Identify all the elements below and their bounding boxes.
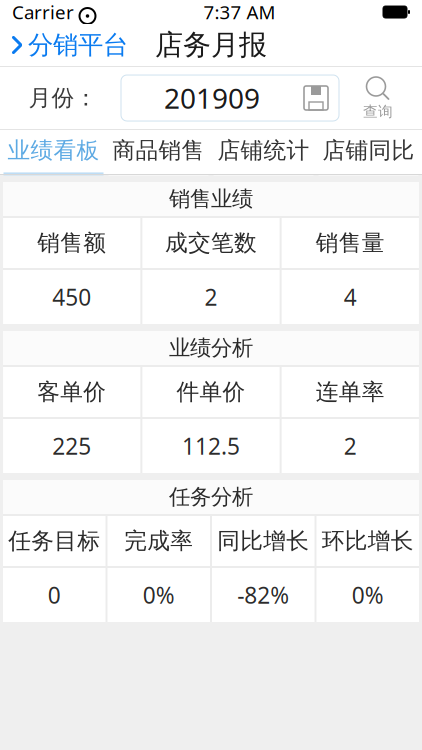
staticText: 任务分析 <box>169 484 253 510</box>
staticText: 112.5 <box>182 431 240 461</box>
staticText: 完成率 <box>124 527 193 555</box>
staticText: 0% <box>143 580 175 610</box>
staticText: 201909 <box>164 79 260 117</box>
staticText: 销售量 <box>316 229 385 257</box>
staticText: 业绩分析 <box>169 335 253 361</box>
button[interactable]: 查询 <box>339 67 417 129</box>
button[interactable]: 店铺统计 <box>211 130 316 174</box>
staticText: 0% <box>352 580 384 610</box>
staticText: 业绩看板 <box>7 137 99 164</box>
staticText: 同比增长 <box>217 527 309 555</box>
staticText: 450 <box>52 282 91 312</box>
staticText: Carrier <box>12 0 74 24</box>
button[interactable]: 业绩看板 <box>1 130 106 174</box>
button[interactable]: 店铺同比 <box>316 130 421 174</box>
staticText: 2 <box>204 282 217 312</box>
staticText: 环比增长 <box>322 527 414 555</box>
staticText: 任务目标 <box>8 527 100 555</box>
staticText: 月份： <box>28 84 97 112</box>
staticText: -82% <box>237 580 289 610</box>
staticText: 4 <box>344 282 357 312</box>
button[interactable]: 分销平台 <box>0 23 128 66</box>
staticText: 店铺同比 <box>322 137 414 164</box>
staticText: 2 <box>344 431 357 461</box>
staticText: 分销平台 <box>28 29 128 60</box>
staticText: 商品销售 <box>112 137 204 164</box>
staticText: 件单价 <box>176 378 245 406</box>
staticText: 成交笔数 <box>165 229 257 257</box>
staticText: 客单价 <box>37 378 106 406</box>
staticText: 连单率 <box>316 378 385 406</box>
staticText: 7:37 AM <box>203 0 275 24</box>
button[interactable]: 商品销售 <box>106 130 211 174</box>
button[interactable]: Save <box>303 85 339 111</box>
staticText: 销售业绩 <box>169 186 253 212</box>
staticText: 销售额 <box>37 229 106 257</box>
staticText: 225 <box>52 431 91 461</box>
staticText: 店铺统计 <box>217 137 309 164</box>
staticText: 店务月报 <box>155 28 267 62</box>
staticText: 0 <box>48 580 61 610</box>
staticText: 查询 <box>363 102 393 120</box>
